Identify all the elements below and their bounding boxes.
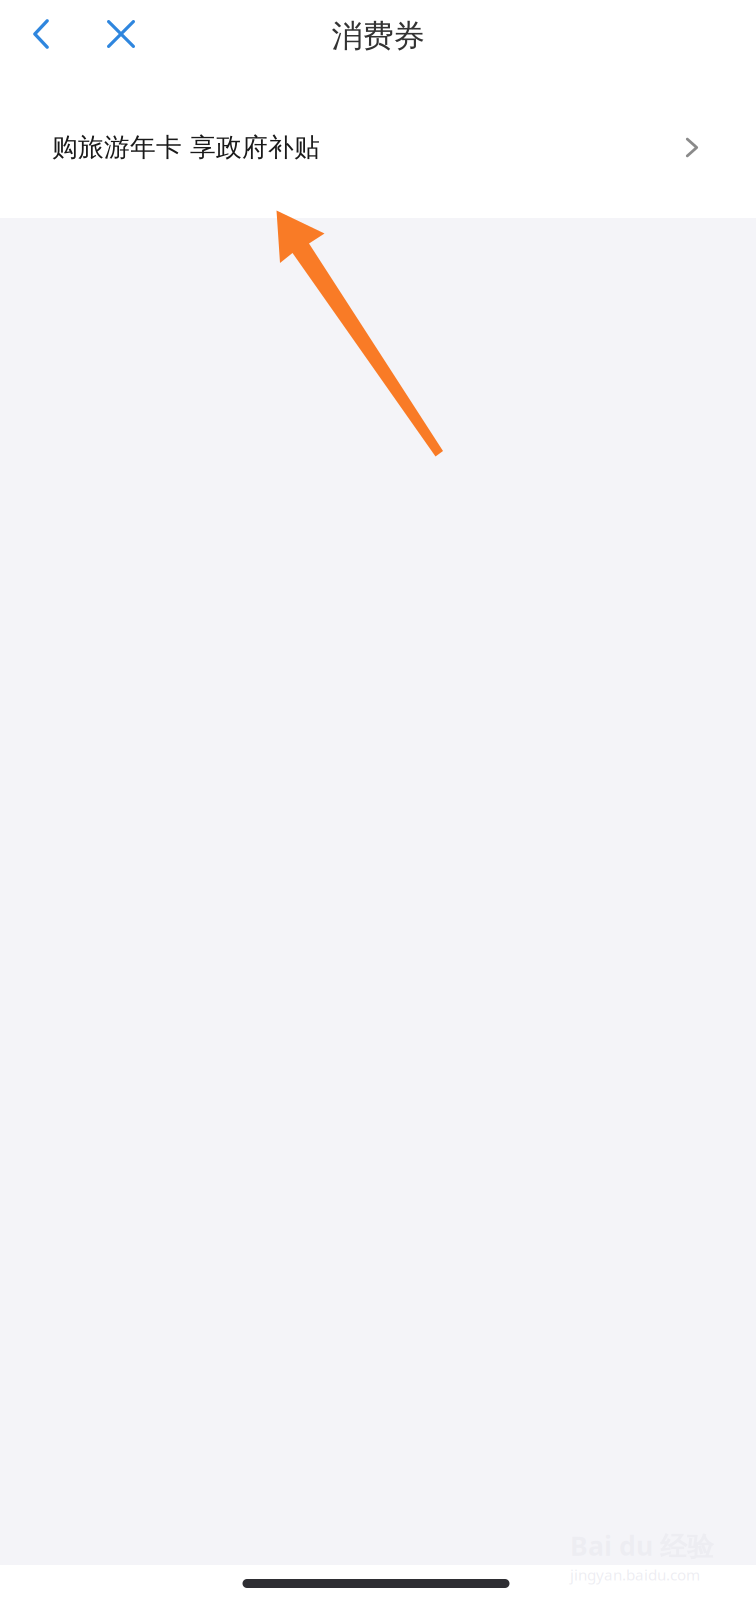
- button[interactable]: 购旅游年卡 享政府补贴: [0, 72, 756, 218]
- staticText: 购旅游年卡 享政府补贴: [52, 131, 320, 164]
- staticText: jingyan.baidu.com: [570, 1564, 700, 1585]
- staticText: 消费券: [331, 16, 424, 56]
- button[interactable]: Back: [1, 0, 81, 72]
- button[interactable]: Close: [81, 0, 161, 72]
